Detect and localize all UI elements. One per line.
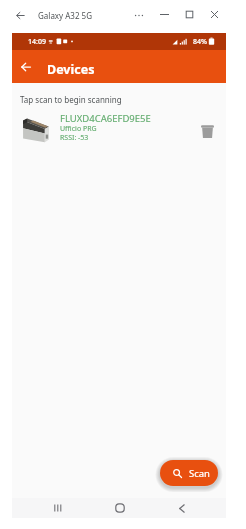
button[interactable]: Minimize [159,9,170,20]
staticText: 84% [193,37,207,47]
button[interactable]: Maximize [184,9,195,20]
button[interactable]: More options [134,10,145,21]
staticText: Ufficio PRG [60,124,97,134]
button[interactable]: FLUXD4CA6EFD9E5E [12,110,226,144]
button[interactable]: Home [107,498,133,518]
button[interactable]: Close [209,9,220,20]
button[interactable]: Delete [195,119,219,143]
button[interactable]: Scan [160,460,218,486]
staticText: Devices [47,61,95,78]
button[interactable]: Back [169,498,195,518]
staticText: 14:09 [28,37,46,47]
button[interactable]: Recents [45,498,71,518]
button[interactable]: Back [14,9,27,22]
button[interactable]: Navigate up [13,54,38,79]
staticText: RSSI: -53 [60,133,89,143]
staticText: Galaxy A32 5G [38,10,92,21]
staticText: Scan [189,467,210,480]
staticText: FLUXD4CA6EFD9E5E [60,112,151,125]
staticText: Tap scan to begin scanning [20,94,122,105]
